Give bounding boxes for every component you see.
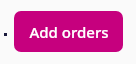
button[interactable]: Add orders — [14, 11, 123, 52]
staticText: Add orders — [29, 22, 109, 42]
